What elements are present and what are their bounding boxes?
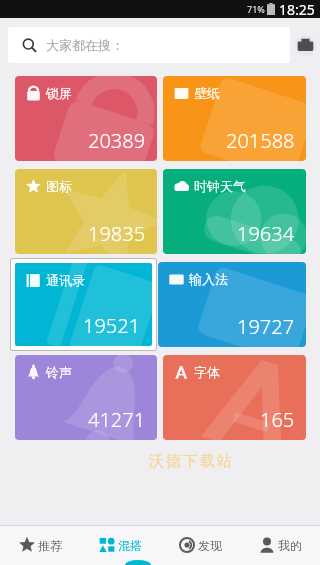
button[interactable]: 文件夹	[290, 18, 320, 72]
staticText: 19835	[88, 220, 146, 247]
staticText: 图标	[46, 178, 72, 194]
staticText: 推荐	[38, 538, 62, 553]
staticText: 发现	[198, 538, 222, 553]
button[interactable]: 时钟天气	[163, 169, 306, 254]
button[interactable]: 字体	[163, 355, 306, 440]
button[interactable]: 大家都在搜：	[8, 27, 290, 63]
staticText: 我的	[278, 538, 302, 553]
staticText: 时钟天气	[194, 178, 246, 194]
staticText: 71%	[247, 3, 265, 15]
staticText: 输入法	[189, 271, 228, 287]
staticText: 字体	[194, 364, 220, 380]
button[interactable]: 发现	[160, 525, 240, 565]
staticText: 大家都在搜：	[46, 37, 124, 53]
button[interactable]: 壁纸	[163, 76, 306, 161]
button[interactable]: 图标	[15, 169, 157, 254]
button[interactable]: 我的	[240, 525, 320, 565]
staticText: 18:25	[279, 0, 315, 18]
staticText: 沃德下载站	[148, 452, 233, 471]
staticText: 20389	[88, 127, 146, 154]
button[interactable]: 推荐	[0, 525, 80, 565]
staticText: 铃声	[46, 364, 72, 380]
button[interactable]: 混搭	[80, 525, 160, 565]
staticText: 混搭	[118, 538, 142, 553]
staticText: 通讯录	[46, 272, 85, 288]
button[interactable]: 锁屏	[15, 76, 157, 161]
button[interactable]: 输入法	[158, 262, 306, 347]
staticText: 19521	[83, 312, 141, 339]
button[interactable]: 通讯录	[15, 263, 152, 346]
staticText: 201588	[226, 127, 295, 154]
staticText: 壁纸	[194, 85, 220, 101]
staticText: 锁屏	[46, 85, 72, 101]
button[interactable]: 铃声	[15, 355, 157, 440]
staticText: 165	[260, 406, 295, 433]
staticText: 41271	[88, 406, 146, 433]
staticText: 19727	[237, 313, 295, 340]
staticText: 19634	[237, 220, 295, 247]
